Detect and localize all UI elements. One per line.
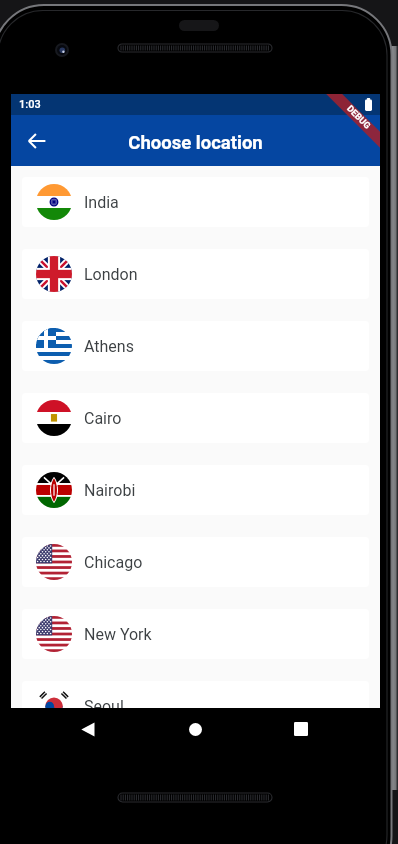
button[interactable]: London <box>22 249 369 299</box>
staticText: India <box>84 193 119 212</box>
staticText: Seoul <box>84 697 124 708</box>
staticText: Athens <box>84 337 134 356</box>
button[interactable]: Cairo <box>22 393 369 443</box>
button[interactable]: Chicago <box>22 537 369 587</box>
staticText: DEBUG <box>344 103 373 132</box>
staticText: 1:03 <box>19 98 41 111</box>
button[interactable]: Home <box>173 707 217 751</box>
staticText: Nairobi <box>84 481 136 500</box>
staticText: Cairo <box>84 409 122 428</box>
button[interactable]: New York <box>22 609 369 659</box>
button[interactable]: India <box>22 177 369 227</box>
button[interactable]: Nairobi <box>22 465 369 515</box>
button[interactable]: Back <box>15 119 59 163</box>
button[interactable]: Seoul <box>22 681 369 708</box>
staticText: New York <box>84 625 152 644</box>
staticText: London <box>84 265 138 284</box>
button[interactable]: Back <box>66 707 110 751</box>
staticText: Chicago <box>84 553 143 572</box>
button[interactable]: Recent apps <box>279 707 323 751</box>
staticText: Choose location <box>128 132 263 154</box>
button[interactable]: Athens <box>22 321 369 371</box>
